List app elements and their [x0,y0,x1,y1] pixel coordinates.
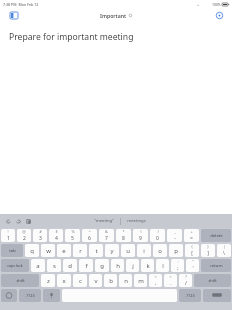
button[interactable]: ^ [82,229,97,242]
staticText: x [62,277,66,285]
staticText: 9 [139,235,142,242]
button[interactable]: x [57,274,71,287]
staticText: [ [191,250,193,257]
button[interactable]: < [149,274,162,287]
button[interactable]: Paste [26,219,31,224]
button[interactable]: .?123 [179,289,201,302]
staticText: 1 [7,235,10,242]
button[interactable]: t [89,244,103,257]
button[interactable]: & [99,229,114,242]
button[interactable]: { [185,244,199,257]
staticText: g [100,262,104,270]
button[interactable]: d [63,259,77,272]
button[interactable]: k [141,259,154,272]
button[interactable]: g [95,259,109,272]
staticText: p [174,247,178,255]
button[interactable]: w [41,244,55,257]
staticText: shift [16,278,25,283]
staticText: l [162,262,164,270]
button[interactable]: ) [150,229,165,242]
button[interactable]: r [73,244,87,257]
staticText: .?123 [185,293,195,298]
staticText: a [36,262,40,270]
button[interactable]: + [184,229,199,242]
button[interactable]: o [153,244,167,257]
button[interactable]: Redo [16,219,21,224]
button[interactable]: Dictate [43,289,60,302]
staticText: z [47,277,50,285]
staticText: 2 [23,235,26,242]
button[interactable]: @ [17,229,31,242]
button[interactable]: * [116,229,131,242]
button[interactable]: Hide keyboard [203,289,231,302]
button[interactable]: l [156,259,169,272]
staticText: , [155,280,157,287]
staticText: 0 [156,235,159,242]
button[interactable]: f [79,259,93,272]
button[interactable]: e [57,244,71,257]
staticText: 8 [122,235,125,242]
button[interactable]: b [104,274,117,287]
staticText: Important [100,12,127,19]
staticText: . [170,280,172,287]
button[interactable]: ! [1,229,15,242]
button[interactable]: j [126,259,139,272]
button[interactable]: a [31,259,45,272]
staticText: "meeting" [94,218,114,224]
button[interactable]: u [121,244,135,257]
button[interactable]: % [65,229,80,242]
button[interactable]: tab [1,244,23,257]
staticText: n [124,277,128,285]
button[interactable]: Undo [6,219,11,224]
button[interactable]: ? [179,274,192,287]
button[interactable]: ( [133,229,148,242]
button[interactable]: .?123 [19,289,41,302]
button[interactable]: Emoji [1,289,17,302]
button[interactable]: Delete [201,229,231,242]
staticText: ; [177,265,179,272]
button[interactable]: s [47,259,61,272]
staticText: ] [207,250,209,257]
button[interactable]: c [73,274,87,287]
button[interactable]: caps lock [1,259,29,272]
staticText: } [207,244,209,249]
staticText: i [143,247,145,255]
button[interactable]: $ [49,229,63,242]
button[interactable]: shift [1,274,39,287]
button[interactable]: Show sidebar [8,9,20,21]
button[interactable]: i [137,244,151,257]
staticText: ( [140,229,142,234]
button[interactable]: meetings [121,218,152,224]
button[interactable]: shift [194,274,231,287]
button[interactable]: New note [213,9,225,21]
button[interactable]: q [25,244,39,257]
button[interactable]: Important [100,12,132,19]
staticText: $ [55,229,58,234]
staticText: q [30,247,34,255]
button[interactable]: : [171,259,184,272]
staticText: 5 [71,235,74,242]
staticText: - [174,235,176,242]
button[interactable]: # [33,229,47,242]
button[interactable]: " [186,259,199,272]
button[interactable]: p [169,244,183,257]
button[interactable]: h [111,259,124,272]
staticText: e [62,247,66,255]
button[interactable]: v [89,274,102,287]
button[interactable]: return [201,259,231,272]
button[interactable]: z [41,274,55,287]
button[interactable]: "meeting" [88,218,120,224]
staticText: ! [7,229,9,234]
staticText: d [68,262,72,270]
staticText: \ [223,250,225,257]
button[interactable]: } [201,244,215,257]
button[interactable]: _ [167,229,182,242]
button[interactable]: > [164,274,177,287]
button[interactable]: n [119,274,132,287]
button[interactable]: y [105,244,119,257]
button[interactable]: m [134,274,147,287]
staticText: h [116,262,120,270]
staticText: # [39,229,42,234]
button[interactable]: | [217,244,231,257]
